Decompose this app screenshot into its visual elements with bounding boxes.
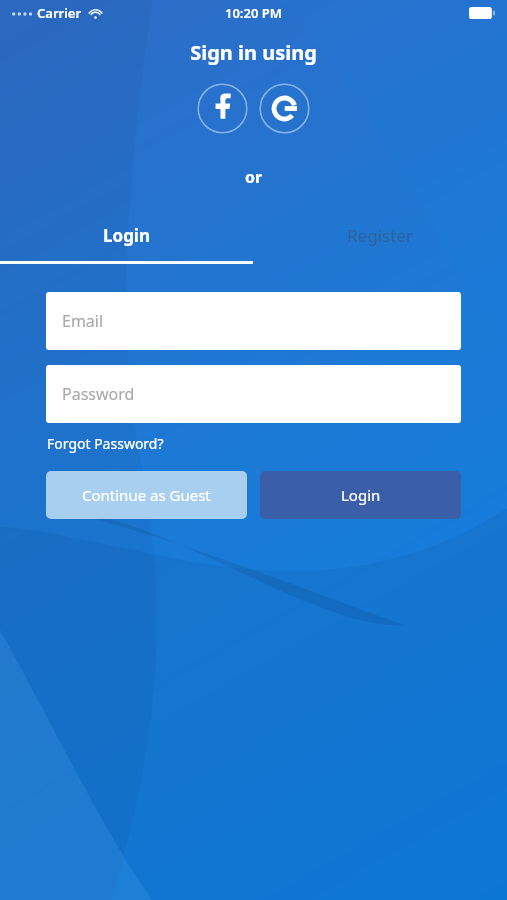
button[interactable]: Login xyxy=(0,217,253,253)
staticText: Password xyxy=(62,383,135,405)
staticText: Forgot Password? xyxy=(47,434,164,453)
staticText: Login xyxy=(341,485,381,505)
staticText: Carrier xyxy=(37,4,82,22)
button[interactable]: Email xyxy=(46,292,461,350)
staticText: Email xyxy=(62,310,104,332)
staticText: Continue as Guest xyxy=(82,485,211,505)
staticText: Register xyxy=(347,224,413,247)
staticText: or xyxy=(0,166,507,188)
button[interactable]: Continue as Guest xyxy=(46,471,247,519)
staticText: 10:20 PM xyxy=(225,4,282,22)
button[interactable]: Sign in with Facebook xyxy=(197,83,248,134)
button[interactable]: Password xyxy=(46,365,461,423)
staticText: Login xyxy=(103,224,151,247)
button[interactable]: Register xyxy=(253,217,507,253)
button[interactable]: Sign in with Google xyxy=(259,83,310,134)
staticText: Sign in using xyxy=(0,39,507,66)
button[interactable]: Forgot Password? xyxy=(46,432,165,455)
button[interactable]: Login xyxy=(260,471,461,519)
